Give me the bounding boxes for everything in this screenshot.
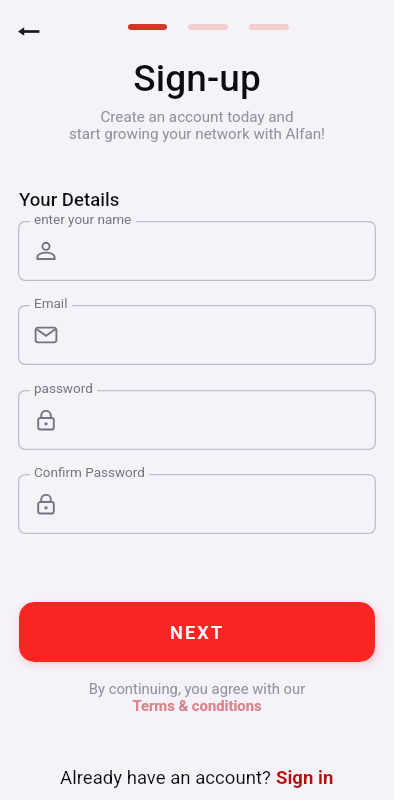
button[interactable]: NEXT [19,602,375,662]
staticText: Create an account today and start growin… [0,108,394,143]
staticText: Confirm Password [34,464,145,480]
button[interactable] [18,221,376,281]
button[interactable]: Back [8,13,44,49]
staticText: Sign-up [0,57,394,100]
staticText: Your Details [19,189,120,211]
staticText: Email [34,295,68,311]
button[interactable]: Terms & conditions [0,697,394,714]
staticText: NEXT [170,622,225,643]
button[interactable] [18,390,376,450]
staticText: password [34,380,93,396]
staticText: enter your name [34,211,132,227]
button[interactable] [18,305,376,365]
staticText: Already have an account? [60,767,276,789]
button[interactable] [18,474,376,534]
button[interactable]: Sign in [276,767,334,789]
staticText: By continuing, you agree with our [0,680,394,697]
